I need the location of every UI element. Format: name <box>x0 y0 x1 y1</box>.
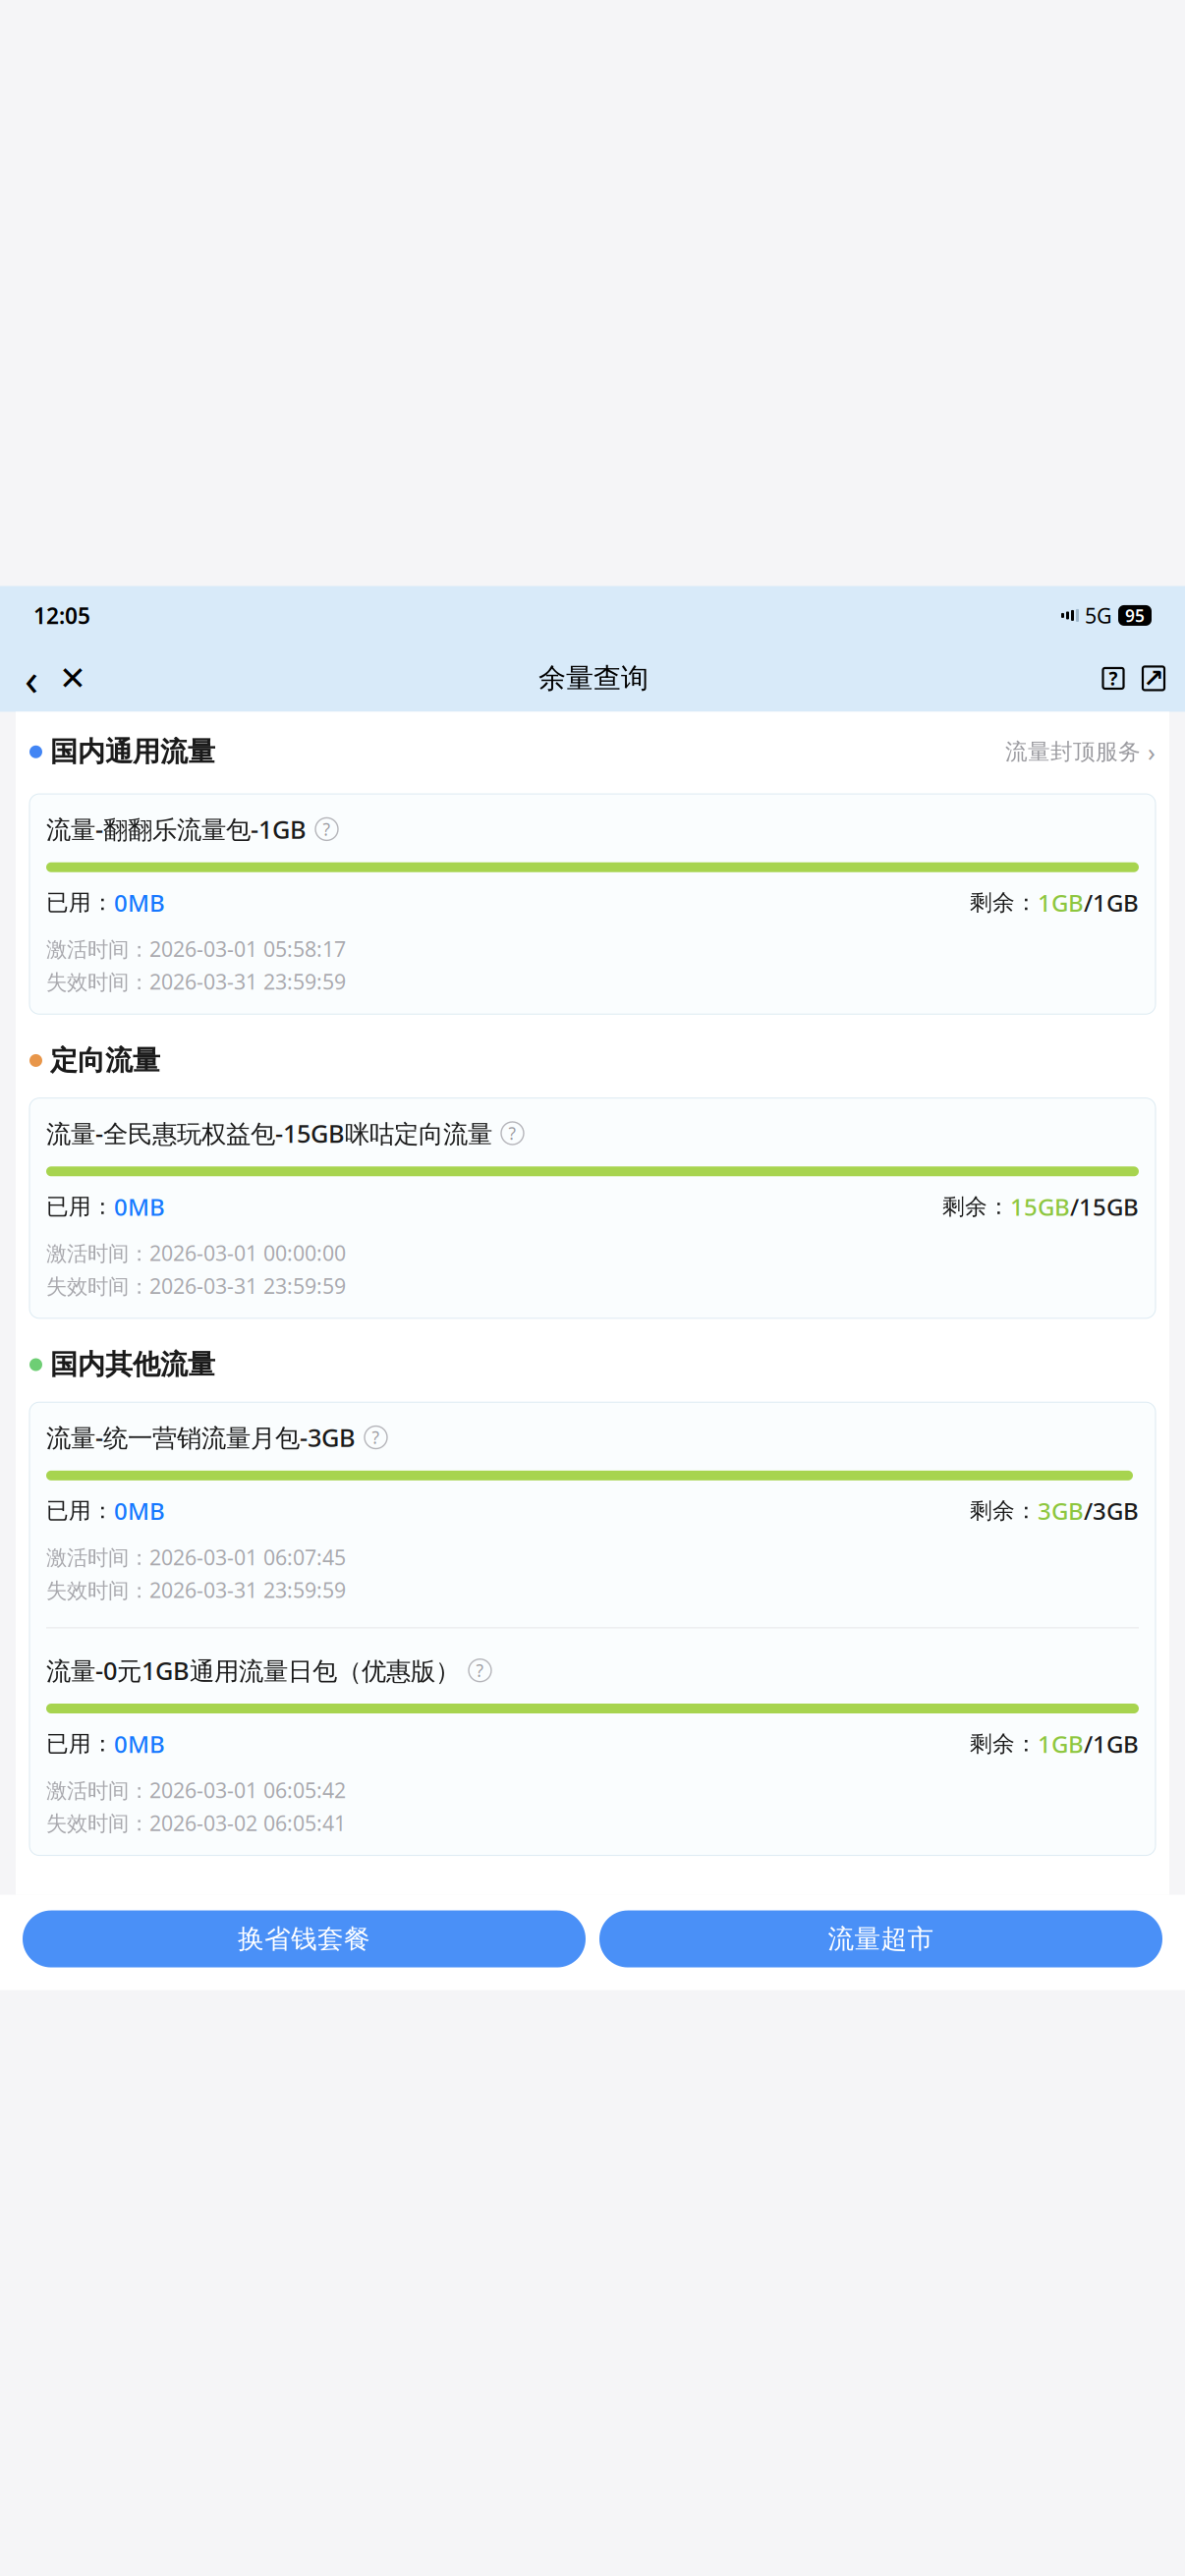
staticText: 国内通用流量 <box>50 735 215 769</box>
staticText: 已用： <box>46 1193 114 1220</box>
staticText: 流量-0元1GB通用流量日包（优惠版） <box>46 1654 460 1687</box>
button[interactable]: 换省钱套餐 <box>23 1910 586 1967</box>
button[interactable]: 套餐说明 <box>365 1426 387 1449</box>
staticText: ? <box>476 1659 484 1682</box>
staticText: 0MB <box>114 1191 165 1222</box>
staticText: ? <box>508 1122 516 1145</box>
button[interactable]: Back <box>12 657 51 700</box>
button[interactable]: 流量封顶服务 <box>1005 731 1156 772</box>
staticText: 流量-统一营销流量月包-3GB <box>46 1421 356 1454</box>
staticText: 失效时间：2026-03-02 06:05:41 <box>46 1809 346 1837</box>
staticText: 0MB <box>114 887 165 918</box>
staticText: 3GB <box>1038 1495 1084 1527</box>
button[interactable]: Help <box>1093 657 1134 700</box>
staticText: 余量查询 <box>538 661 649 695</box>
staticText: 剩余： <box>970 1497 1038 1524</box>
staticText: 已用： <box>46 1497 114 1524</box>
button[interactable]: 套餐说明 <box>315 818 338 840</box>
staticText: 15GB <box>1010 1191 1070 1222</box>
staticText: 失效时间：2026-03-31 23:59:59 <box>46 968 346 995</box>
staticText: 流量超市 <box>828 1923 934 1955</box>
button[interactable]: Share <box>1134 657 1173 700</box>
staticText: 换省钱套餐 <box>238 1923 370 1955</box>
staticText: ✕ <box>59 660 86 697</box>
staticText: 1GB <box>1038 887 1084 918</box>
staticText: 失效时间：2026-03-31 23:59:59 <box>46 1272 346 1300</box>
staticText: 已用： <box>46 889 114 916</box>
staticText: ? <box>1109 666 1118 690</box>
staticText: /1GB <box>1084 1728 1139 1759</box>
staticText: /15GB <box>1070 1191 1139 1222</box>
staticText: 5G <box>1085 602 1112 629</box>
staticText: 定向流量 <box>50 1044 160 1077</box>
button[interactable]: Close <box>51 657 94 700</box>
staticText: › <box>1148 735 1156 768</box>
staticText: 剩余： <box>970 889 1038 916</box>
staticText: ‹ <box>25 649 38 708</box>
staticText: 0MB <box>114 1495 165 1527</box>
staticText: 0MB <box>114 1728 165 1759</box>
staticText: 激活时间：2026-03-01 00:00:00 <box>46 1239 346 1267</box>
staticText: 国内其他流量 <box>50 1348 215 1382</box>
staticText: 已用： <box>46 1730 114 1757</box>
staticText: /3GB <box>1084 1495 1139 1527</box>
staticText: ↗ <box>1143 664 1164 693</box>
button[interactable]: 套餐说明 <box>501 1122 524 1145</box>
staticText: 流量封顶服务 <box>1005 738 1141 765</box>
staticText: 剩余： <box>942 1193 1010 1220</box>
staticText: 12:05 <box>33 601 90 630</box>
staticText: 95 <box>1125 604 1145 627</box>
staticText: 激活时间：2026-03-01 05:58:17 <box>46 935 346 963</box>
staticText: 剩余： <box>970 1730 1038 1757</box>
staticText: 激活时间：2026-03-01 06:05:42 <box>46 1776 346 1804</box>
staticText: 流量-全民惠玩权益包-15GB咪咕定向流量 <box>46 1117 492 1150</box>
button[interactable]: 套餐说明 <box>469 1659 491 1682</box>
staticText: 激活时间：2026-03-01 06:07:45 <box>46 1543 346 1571</box>
staticText: ? <box>323 818 331 840</box>
button[interactable]: 流量超市 <box>599 1910 1162 1967</box>
staticText: 1GB <box>1038 1728 1084 1759</box>
staticText: 失效时间：2026-03-31 23:59:59 <box>46 1576 346 1604</box>
staticText: 流量-翻翻乐流量包-1GB <box>46 813 307 846</box>
staticText: /1GB <box>1084 887 1139 918</box>
staticText: ? <box>372 1426 380 1449</box>
